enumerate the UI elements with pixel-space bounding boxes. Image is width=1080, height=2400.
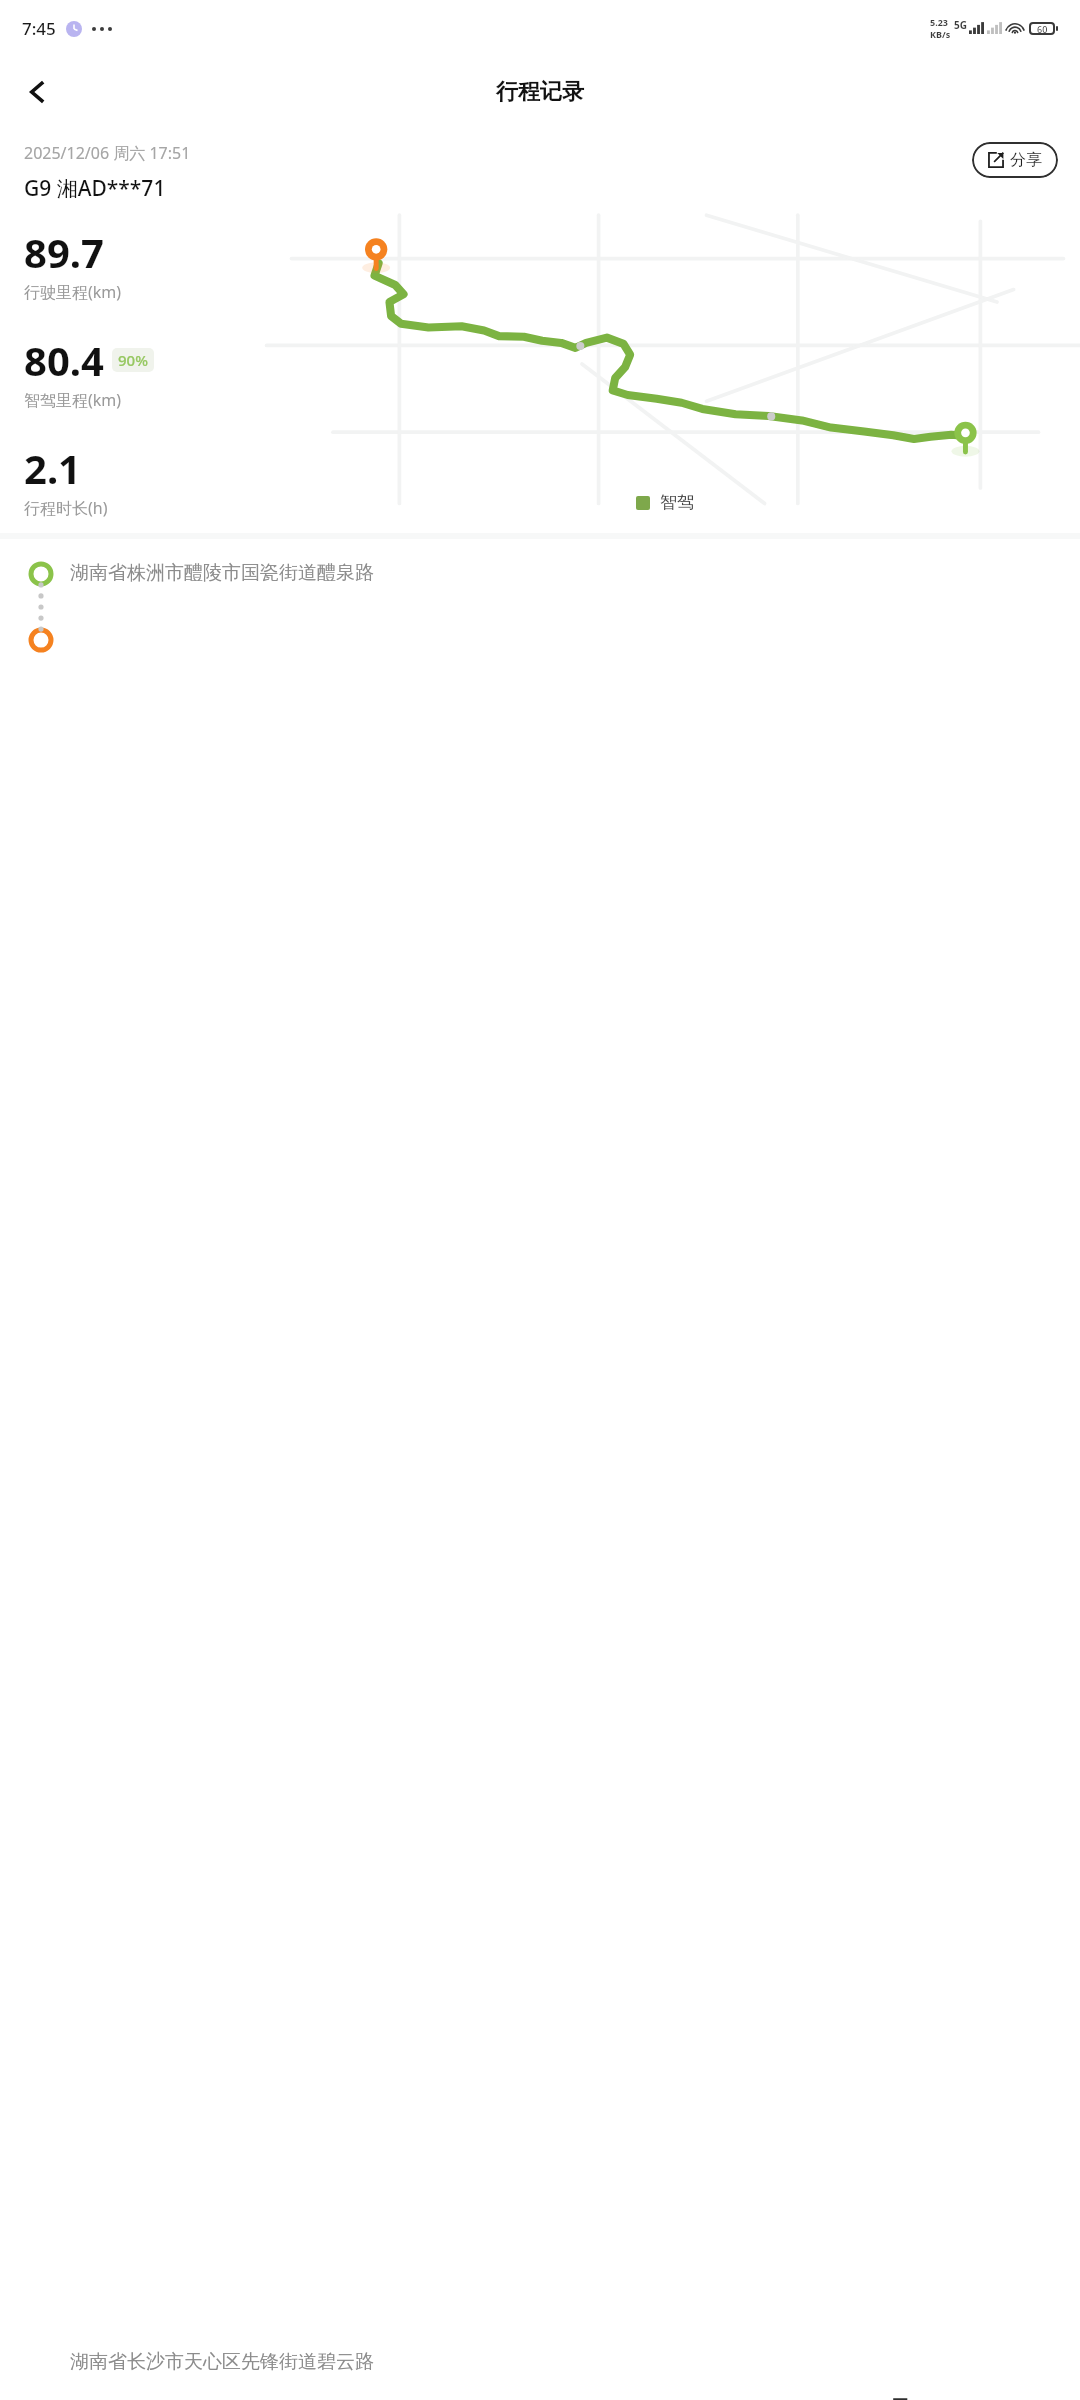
staticText: 行程时长(h) — [24, 497, 108, 519]
staticText: 60 — [1037, 23, 1048, 35]
staticText: 89.7 — [24, 225, 104, 279]
staticText: 智驾 — [660, 492, 694, 513]
staticText: 5.23 — [930, 16, 948, 28]
staticText: KB/s — [930, 28, 951, 40]
staticText: 2.1 — [24, 441, 81, 495]
button[interactable]: 分享 — [972, 142, 1058, 178]
staticText: 湖南省长沙市天心区先锋街道碧云路 — [70, 2350, 374, 2374]
staticText: G9 湘AD***71 — [24, 174, 166, 203]
staticText: 2025/12/06 周六 17:51 — [24, 142, 191, 164]
staticText: 7:45 — [22, 17, 56, 40]
staticText: 90% — [118, 350, 148, 370]
staticText: 湖南省株洲市醴陵市国瓷街道醴泉路 — [70, 561, 374, 585]
staticText: 行程记录 — [496, 78, 584, 106]
staticText: 智驾里程(km) — [24, 389, 122, 411]
staticText: 5G — [954, 18, 967, 32]
staticText: 分享 — [1010, 150, 1042, 170]
staticText: 80.4 — [24, 333, 104, 387]
staticText: 行驶里程(km) — [24, 281, 122, 303]
button[interactable]: Back — [10, 65, 64, 119]
